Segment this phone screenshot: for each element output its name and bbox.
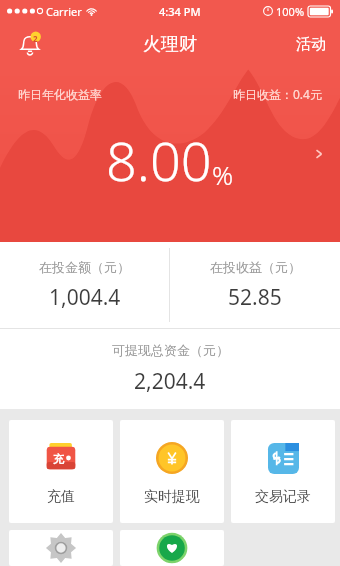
staticText: 2 [33,33,38,44]
staticText: 活动 [296,35,326,54]
staticText: 1,004.4 [49,283,121,312]
staticText: 实时提现 [144,488,200,506]
staticText: 昨日年化收益率 [18,87,102,102]
staticText: 2,204.4 [134,367,206,396]
staticText: % [212,157,234,192]
staticText: 4:34 PM [159,4,201,19]
staticText: 充 [53,452,64,466]
staticText: 在投收益（元） [210,259,301,275]
staticText: Carrier [46,4,82,19]
staticText: 8.00 [106,123,212,197]
staticText: 交易记录 [255,488,311,506]
button[interactable]: Notifications [10,24,50,64]
staticText: 充值 [47,488,75,506]
staticText: 52.85 [228,283,282,312]
button[interactable]: 交易记录 [231,420,335,523]
button[interactable]: 活动 [282,25,340,64]
button[interactable]: 在投金额（元） [0,242,169,328]
button[interactable]: 设置 [9,530,113,566]
staticText: 昨日收益：0.4元 [233,86,322,102]
staticText: 火理财 [143,33,197,56]
button[interactable]: 可提现总资金（元） [0,329,340,409]
staticText: 可提现总资金（元） [112,342,229,358]
button[interactable]: 实时提现 [120,420,224,523]
button[interactable]: 安全保障 [120,530,224,566]
button[interactable]: 充 [9,420,113,523]
button[interactable]: 在投收益（元） [170,242,340,328]
staticText: 在投金额（元） [39,259,130,275]
button[interactable]: 昨日年化收益率 [0,66,340,242]
staticText: 100% [276,4,305,19]
